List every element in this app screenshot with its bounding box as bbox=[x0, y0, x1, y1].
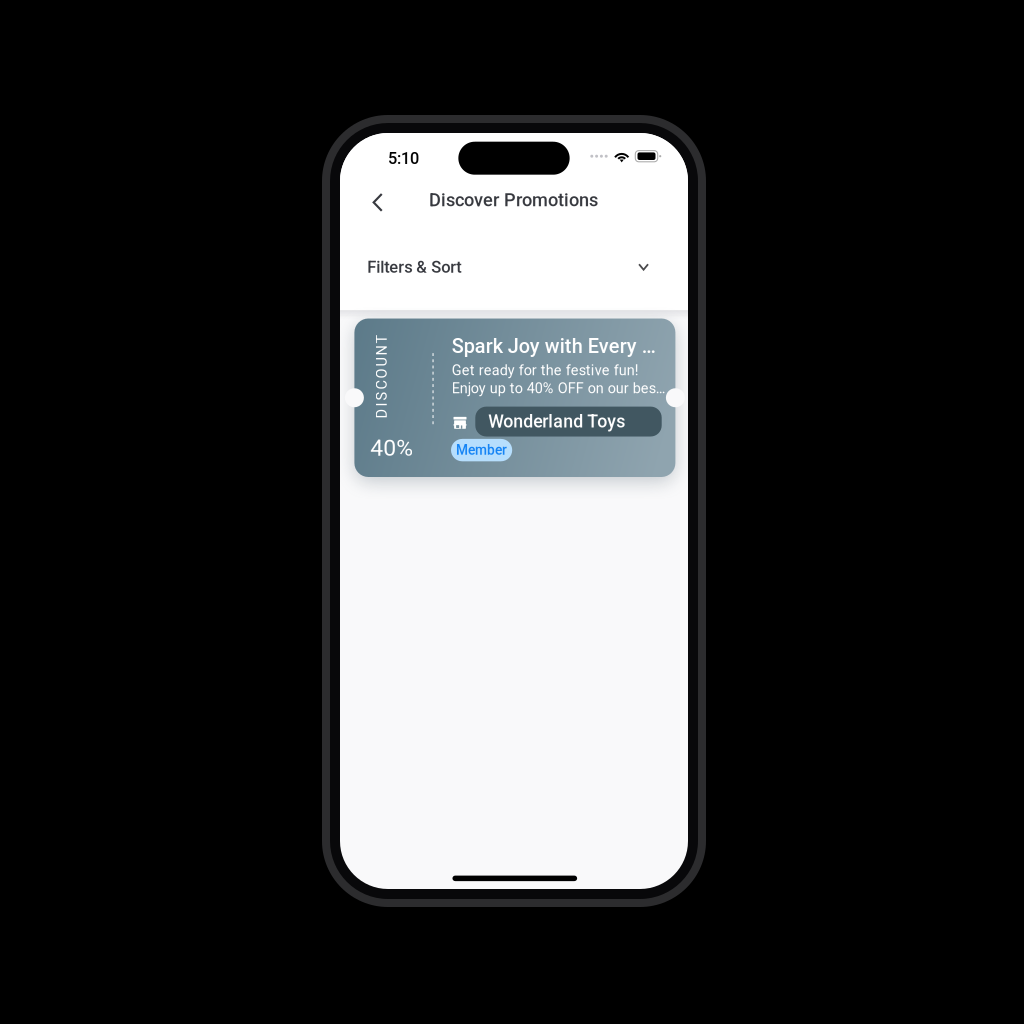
staticText: Get ready for the festive fun! bbox=[452, 362, 639, 379]
button[interactable]: Filters & Sort bbox=[340, 232, 688, 302]
button[interactable]: Back bbox=[356, 180, 400, 224]
staticText: Member bbox=[456, 442, 507, 458]
staticText: Discover Promotions bbox=[429, 189, 598, 211]
staticText: Filters & Sort bbox=[367, 257, 461, 277]
staticText: 5:10 bbox=[388, 149, 419, 168]
staticText: Enjoy up to 40% OFF on our bes… bbox=[452, 380, 666, 397]
button[interactable]: D I S C O U N T bbox=[354, 318, 675, 477]
staticText: Wonderland Toys bbox=[488, 411, 625, 432]
staticText: D I S C O U N T bbox=[340, 368, 424, 385]
staticText: 40% bbox=[370, 434, 413, 461]
staticText: Spark Joy with Every … bbox=[452, 334, 656, 358]
